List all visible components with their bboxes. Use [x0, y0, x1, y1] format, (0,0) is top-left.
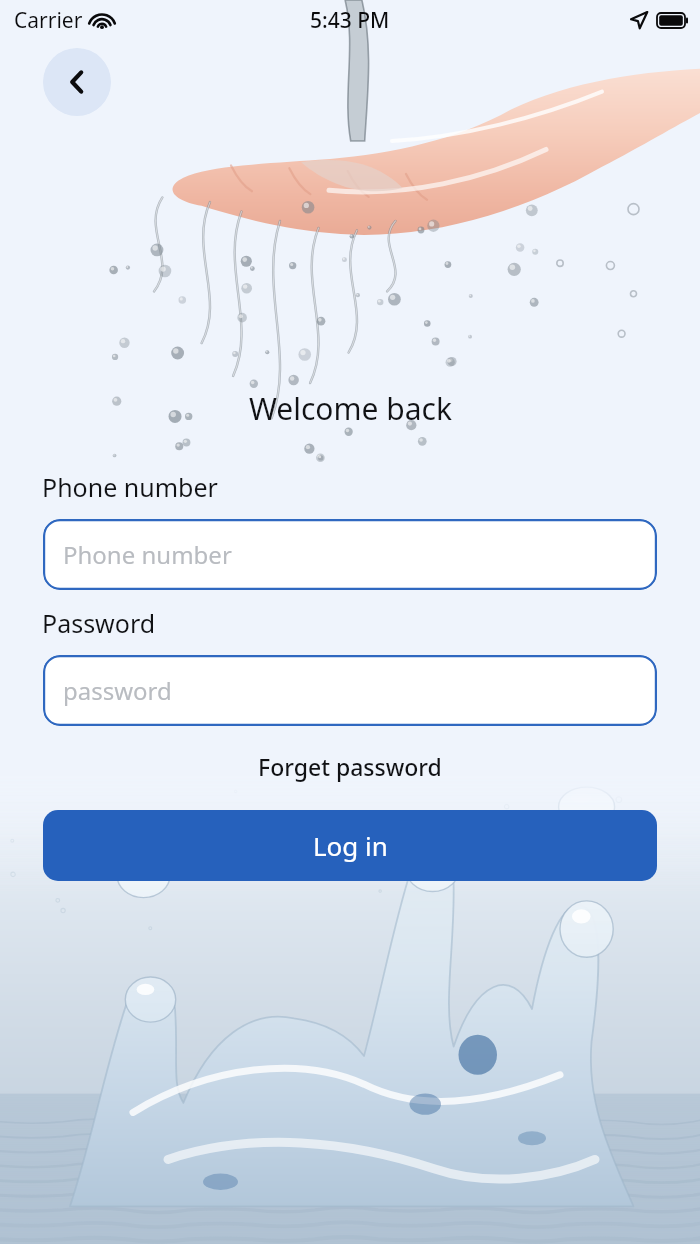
staticText: Phone number	[63, 538, 232, 571]
staticText: Forget password	[258, 751, 442, 782]
staticText: Welcome back	[249, 388, 452, 429]
button[interactable]: Forget password	[252, 749, 448, 784]
staticText: Phone number	[42, 470, 218, 504]
staticText: password	[63, 674, 172, 707]
button[interactable]: Log in	[43, 810, 657, 881]
staticText: Password	[42, 606, 156, 640]
button[interactable]: password	[43, 655, 657, 726]
staticText: Carrier	[14, 6, 83, 35]
staticText: Log in	[313, 828, 388, 863]
staticText: 5:43 PM	[310, 6, 390, 35]
button[interactable]: Back	[43, 48, 111, 116]
button[interactable]: Phone number	[43, 519, 657, 590]
